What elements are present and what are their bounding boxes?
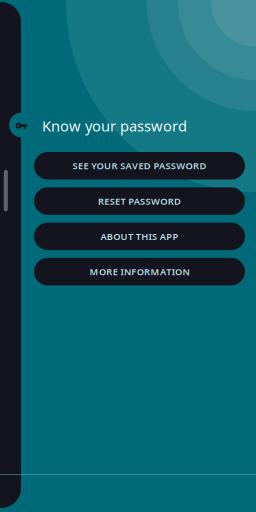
button[interactable]: SEE YOUR SAVED PASSWORD [34, 152, 245, 179]
staticText: Know your password [42, 116, 187, 135]
button[interactable]: MORE INFORMATION [34, 258, 245, 285]
staticText: RESET PASSWORD [98, 195, 181, 207]
button[interactable]: RESET PASSWORD [34, 187, 245, 215]
staticText: ABOUT THIS APP [100, 230, 179, 243]
button[interactable]: ABOUT THIS APP [34, 223, 245, 250]
staticText: SEE YOUR SAVED PASSWORD [73, 160, 206, 172]
staticText: MORE INFORMATION [89, 265, 189, 278]
